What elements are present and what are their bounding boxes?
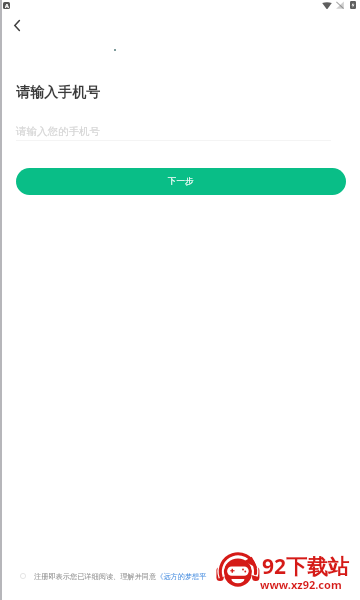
button[interactable]: Back <box>4 12 30 38</box>
button[interactable]: Agree checkbox <box>14 567 32 585</box>
button[interactable]: 下一步 <box>16 168 346 195</box>
staticText: 下一步 <box>168 176 194 187</box>
staticText: 92下载站 <box>262 552 350 581</box>
staticText: 请输入您的手机号 <box>16 125 100 138</box>
staticText: 请输入手机号 <box>16 84 100 102</box>
staticText: www.xz92.com <box>260 577 342 592</box>
staticText: A <box>5 2 9 9</box>
button[interactable]: 注册即表示您已详细阅读、理解并同意《远方的梦想平 <box>34 572 207 581</box>
